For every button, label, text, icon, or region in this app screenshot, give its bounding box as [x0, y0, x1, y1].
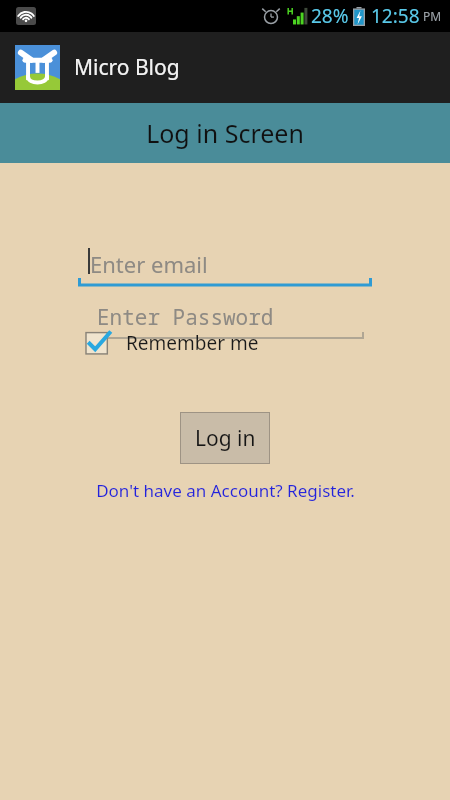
staticText: Log in Screen [146, 116, 304, 150]
button[interactable]: Log in [180, 412, 270, 464]
staticText: Enter email [90, 249, 208, 279]
staticText: Log in [195, 424, 256, 453]
staticText: Micro Blog [74, 53, 180, 82]
staticText: 28% [311, 3, 349, 29]
button[interactable]: Don't have an Account? Register. [0, 475, 450, 505]
staticText: 12:58 [371, 3, 420, 29]
button[interactable]: Enter email [78, 245, 372, 287]
button[interactable]: Remember me [86, 325, 259, 361]
staticText: Don't have an Account? Register. [96, 479, 355, 502]
staticText: Remember me [126, 330, 259, 356]
staticText: PM [423, 8, 442, 24]
staticText: Enter Password [97, 303, 274, 332]
button[interactable]: Enter Password [86, 300, 364, 340]
